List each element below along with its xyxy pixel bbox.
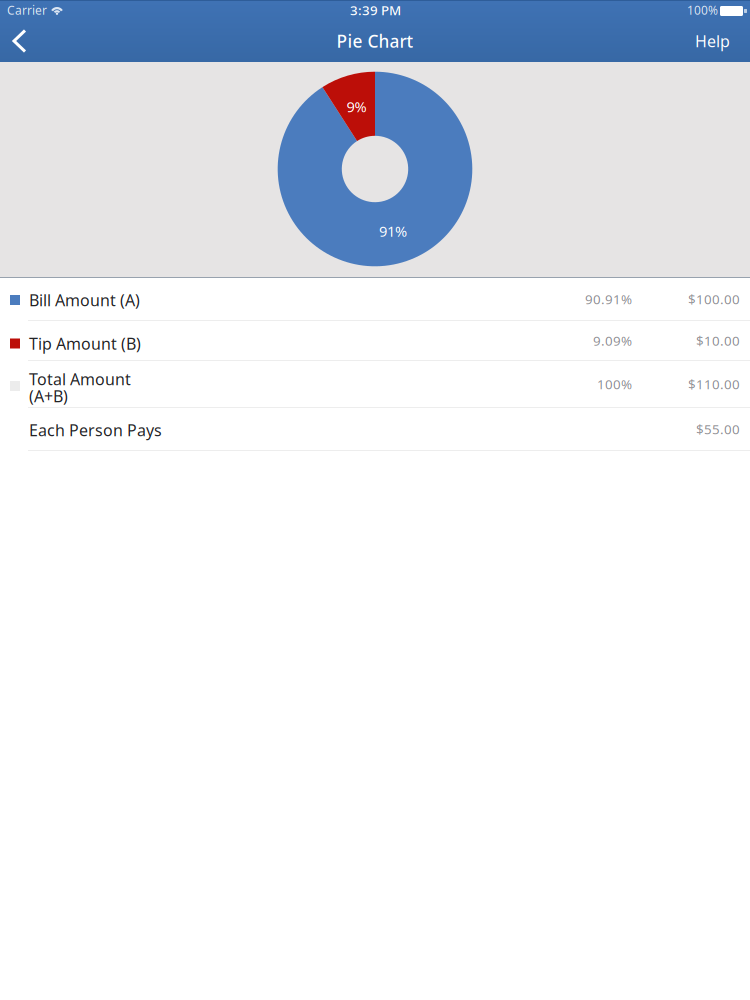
staticText: $100.00 (688, 290, 740, 308)
staticText: 90.91% (585, 290, 632, 308)
staticText: Carrier (7, 2, 47, 18)
button[interactable]: Back (0, 20, 39, 61)
staticText: 3:39 PM (350, 1, 401, 19)
staticText: Help (695, 30, 730, 52)
staticText: Tip Amount (B) (29, 333, 141, 354)
staticText: Pie Chart (336, 29, 413, 52)
staticText: 9% (346, 97, 366, 116)
button[interactable]: Total Amount (0, 361, 750, 407)
staticText: 9.09% (593, 332, 632, 349)
staticText: 100% (597, 375, 632, 393)
button[interactable]: Each Person Pays (0, 408, 750, 450)
staticText: Total Amount (29, 368, 131, 390)
staticText: $110.00 (688, 375, 740, 393)
staticText: (A+B) (29, 385, 68, 407)
button[interactable]: Help (675, 20, 750, 62)
staticText: $10.00 (696, 332, 740, 349)
staticText: $55.00 (696, 420, 740, 438)
button[interactable]: Tip Amount (B) (0, 321, 750, 360)
staticText: 100% (687, 2, 718, 18)
staticText: Bill Amount (A) (29, 289, 140, 311)
staticText: Each Person Pays (29, 419, 162, 441)
staticText: 91% (379, 221, 407, 241)
button[interactable]: Bill Amount (A) (0, 278, 750, 320)
